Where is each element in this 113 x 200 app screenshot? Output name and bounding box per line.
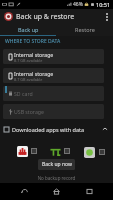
staticText: 8.7 GB available: [14, 77, 43, 82]
button[interactable]: SD card: [3, 86, 104, 101]
button[interactable]: Home: [48, 183, 65, 200]
button[interactable]: Select app: [99, 149, 105, 155]
button[interactable]: Back: [16, 183, 33, 200]
staticText: WHERE TO STORE DATA: [5, 38, 61, 45]
staticText: 46%: [73, 1, 83, 8]
button[interactable]: Restore: [56, 24, 113, 36]
button[interactable]: Back up now: [38, 159, 75, 170]
staticText: No backup record: [0, 175, 113, 181]
other: Collapse: [102, 126, 108, 132]
button[interactable]: Downloaded apps with data: [0, 123, 113, 135]
other: App icon: [4, 12, 13, 21]
staticText: Back up: [18, 26, 39, 33]
staticText: Internal storage: [14, 51, 54, 58]
button[interactable]: Back up: [0, 24, 56, 36]
button[interactable]: App: [17, 146, 28, 157]
staticText: SD card: [14, 90, 33, 97]
button[interactable]: More options: [100, 9, 113, 24]
button[interactable]: Select app: [64, 148, 70, 154]
staticText: 10:51: [96, 1, 111, 8]
button[interactable]: Internal storage: [3, 49, 104, 64]
button[interactable]: USB storage: [3, 104, 104, 119]
staticText: Back up now: [42, 161, 72, 168]
button[interactable]: Select app: [31, 148, 37, 154]
staticText: Back up & restore: [16, 12, 75, 22]
button[interactable]: App: [84, 147, 95, 158]
button[interactable]: App: [50, 146, 61, 157]
staticText: Downloaded apps with data: [12, 126, 85, 133]
staticText: USB storage: [14, 108, 44, 115]
button[interactable]: Internal storage: [3, 68, 104, 83]
button[interactable]: Recents: [81, 183, 98, 200]
staticText: Restore: [75, 26, 95, 33]
staticText: 8.7 GB available: [14, 58, 43, 63]
staticText: Internal storage: [14, 70, 54, 77]
